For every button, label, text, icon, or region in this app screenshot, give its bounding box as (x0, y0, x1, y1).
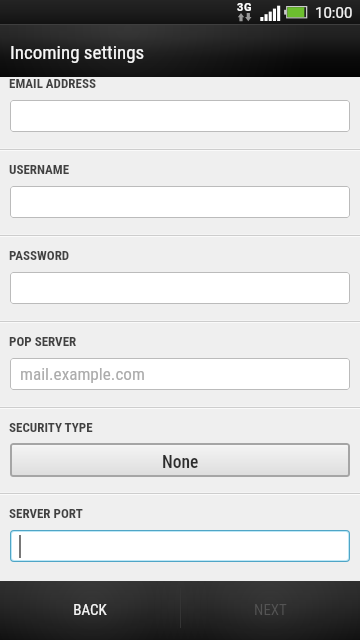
button[interactable]: Email address (10, 100, 350, 132)
staticText: 3G (237, 1, 253, 14)
staticText: SERVER PORT (9, 506, 83, 521)
staticText: Incoming settings (10, 41, 145, 63)
button[interactable]: POP server (10, 358, 350, 390)
staticText: BACK (73, 601, 107, 619)
staticText: POP SERVER (9, 334, 77, 349)
staticText: EMAIL ADDRESS (9, 76, 96, 91)
button[interactable]: None (10, 443, 350, 477)
staticText: NEXT (254, 601, 287, 619)
button[interactable]: NEXT (180, 581, 360, 640)
staticText: None (162, 452, 199, 473)
button[interactable]: Password (10, 272, 350, 304)
staticText: USERNAME (9, 162, 70, 177)
staticText: mail.example.com (20, 364, 145, 384)
button[interactable]: Username (10, 186, 350, 218)
staticText: SECURITY TYPE (9, 420, 93, 435)
button[interactable]: BACK (0, 581, 180, 640)
button[interactable]: Server port (10, 530, 350, 562)
staticText: PASSWORD (9, 248, 70, 263)
staticText: 10:00 (315, 4, 353, 22)
